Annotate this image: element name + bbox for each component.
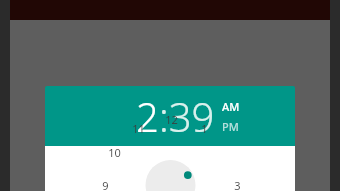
staticText: 12: [165, 112, 178, 127]
button[interactable]: AM: [222, 99, 240, 114]
button[interactable]: PM: [222, 119, 239, 134]
button[interactable]: Clock dial, select hour: [88, 160, 253, 191]
button[interactable]: :39: [159, 89, 215, 143]
staticText: 3: [234, 178, 241, 191]
staticText: 9: [102, 178, 109, 191]
staticText: 2: [225, 145, 232, 160]
staticText: PM: [222, 119, 239, 134]
staticText: 11: [132, 121, 145, 136]
button[interactable]: 2: [136, 89, 159, 143]
staticText: 10: [108, 145, 121, 160]
staticText: AM: [222, 99, 240, 114]
staticText: 1: [201, 121, 208, 136]
